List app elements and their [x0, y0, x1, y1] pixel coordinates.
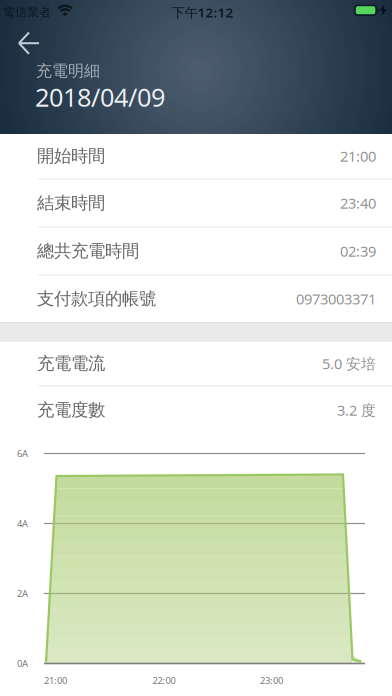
staticText: 6A	[17, 447, 28, 460]
staticText: 充電電流	[37, 353, 105, 374]
staticText: 21:00	[340, 146, 376, 166]
staticText: 0A	[17, 657, 28, 670]
staticText: 3.2 度	[337, 400, 376, 420]
staticText: 支付款項的帳號	[37, 288, 156, 309]
staticText: 電信業者	[3, 5, 51, 20]
staticText: 23:40	[340, 193, 376, 213]
staticText: 充電明細	[36, 61, 100, 81]
staticText: 5.0 安培	[322, 354, 376, 373]
staticText: 02:39	[340, 241, 376, 261]
staticText: 充電度數	[37, 399, 105, 421]
staticText: 21:00	[44, 674, 67, 687]
staticText: 0973003371	[296, 289, 376, 308]
staticText: 結束時間	[37, 192, 105, 214]
staticText: 2018/04/09	[35, 80, 165, 114]
staticText: 總共充電時間	[37, 240, 139, 262]
staticText: 開始時間	[37, 145, 105, 167]
staticText: 4A	[17, 517, 28, 530]
button[interactable]: Back	[8, 24, 52, 64]
staticText: 22:00	[152, 674, 175, 687]
staticText: 2A	[17, 587, 28, 600]
staticText: 下午12:12	[171, 3, 233, 21]
staticText: 23:00	[260, 674, 283, 687]
